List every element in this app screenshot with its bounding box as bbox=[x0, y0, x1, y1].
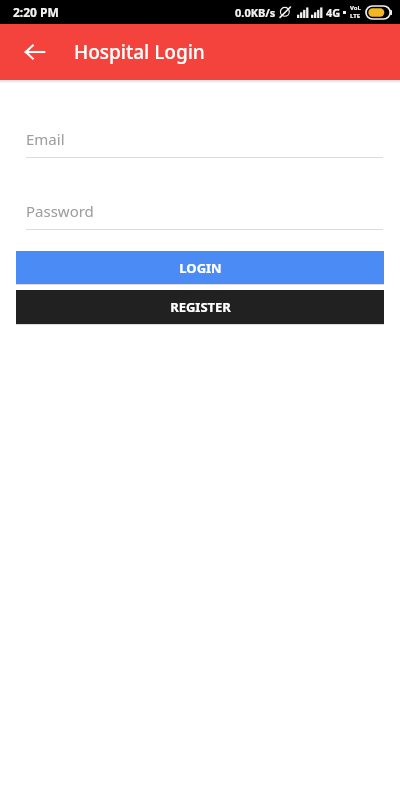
button[interactable]: Password bbox=[26, 201, 383, 230]
button[interactable]: LOGIN bbox=[16, 251, 384, 284]
staticText: Hospital Login bbox=[74, 39, 205, 65]
staticText: Password bbox=[26, 201, 94, 221]
button[interactable]: REGISTER bbox=[16, 290, 384, 324]
staticText: VoL bbox=[350, 4, 361, 12]
staticText: 4G bbox=[326, 5, 341, 20]
staticText: LTE bbox=[350, 12, 361, 20]
staticText: REGISTER bbox=[170, 298, 231, 316]
staticText: 0.0KB/s bbox=[235, 5, 276, 20]
staticText: 2:20 PM bbox=[13, 4, 59, 20]
button[interactable]: Email bbox=[26, 129, 383, 158]
staticText: LOGIN bbox=[179, 259, 222, 277]
staticText: Email bbox=[26, 129, 65, 149]
button[interactable]: Back bbox=[12, 29, 58, 75]
